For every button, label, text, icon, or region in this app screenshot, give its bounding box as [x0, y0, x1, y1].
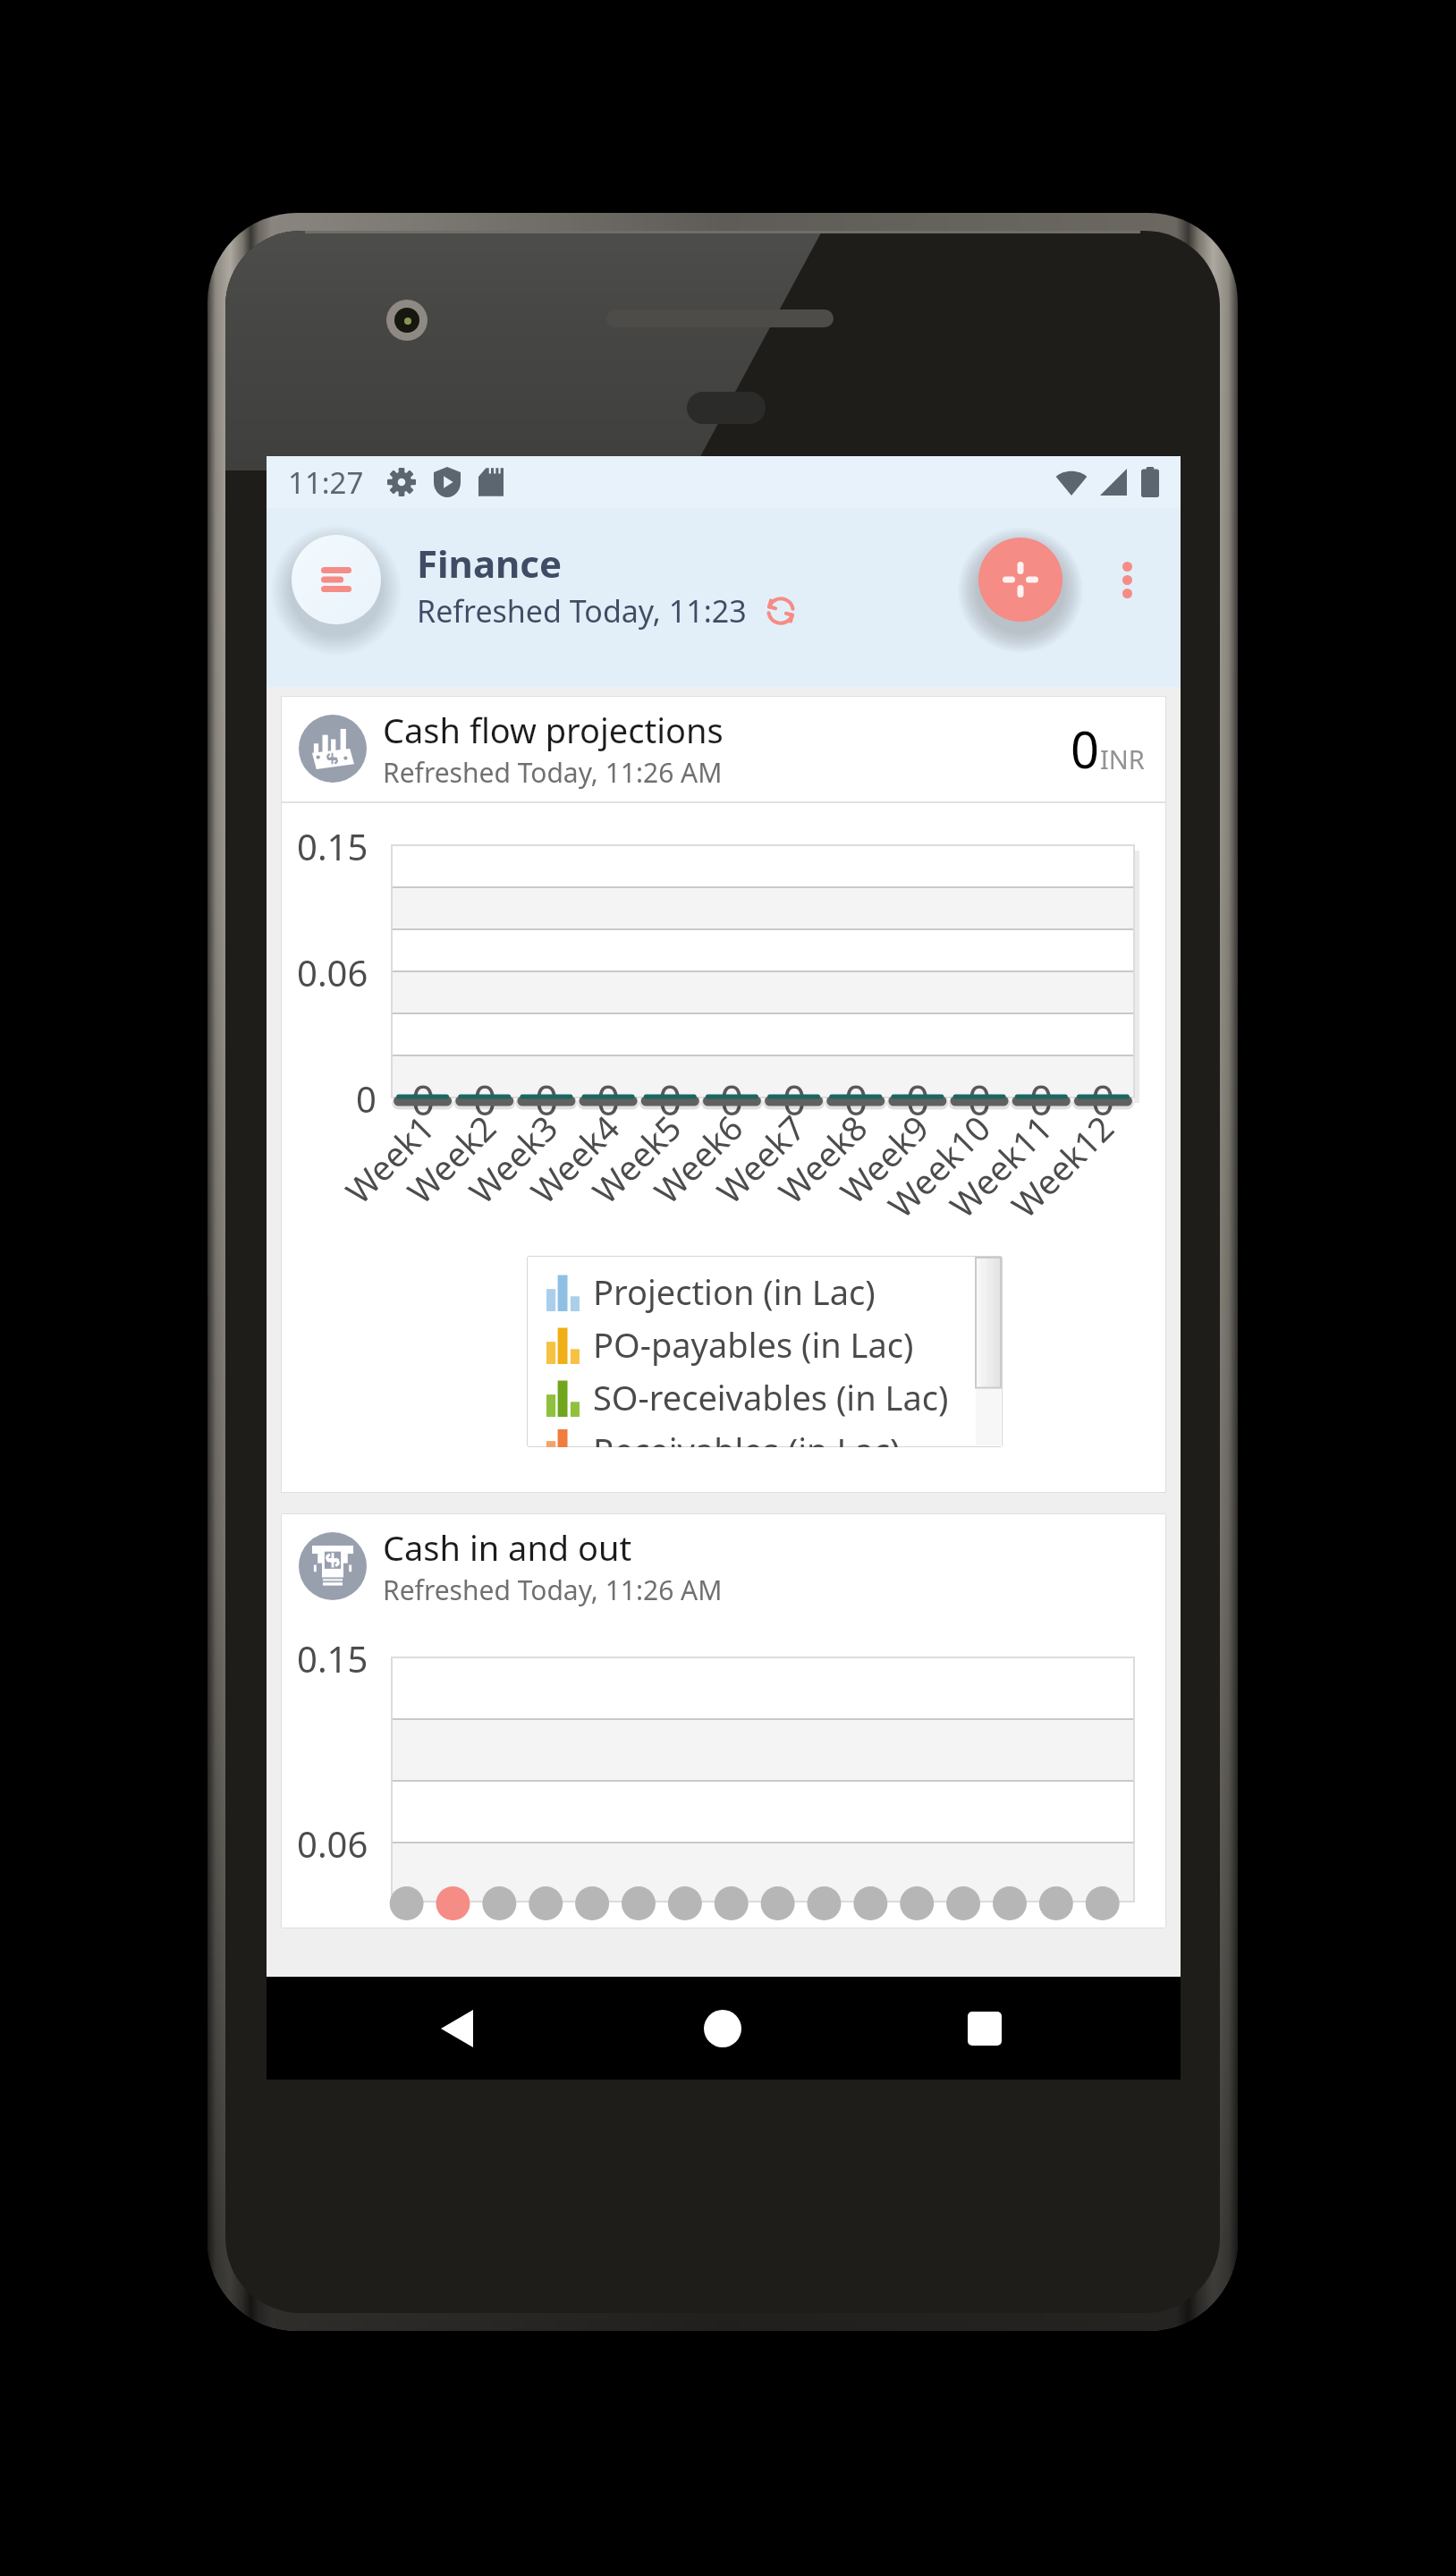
- button[interactable]: Cash in and out: [281, 1513, 1166, 1928]
- staticText: 0: [1091, 1072, 1115, 1128]
- staticText: Finance: [417, 538, 563, 589]
- staticText: 0: [597, 1072, 621, 1128]
- button[interactable]: Back: [414, 1986, 500, 2072]
- staticText: Cash in and out: [383, 1524, 632, 1571]
- staticText: Cash flow projections: [383, 707, 724, 753]
- button[interactable]: Scan: [978, 538, 1062, 622]
- staticText: 0.06: [297, 1819, 368, 1868]
- staticText: 0: [356, 1074, 377, 1123]
- staticText: Week3: [458, 1104, 567, 1213]
- staticText: Week4: [520, 1104, 629, 1213]
- button[interactable]: Cash flow projections: [281, 696, 1166, 1493]
- staticText: Week12: [1001, 1104, 1124, 1227]
- staticText: 0.15: [297, 1634, 368, 1682]
- staticText: 0: [411, 1072, 436, 1128]
- staticText: Week9: [830, 1104, 938, 1213]
- staticText: Week7: [706, 1104, 815, 1213]
- staticText: PO-payables (in Lac): [593, 1321, 914, 1368]
- staticText: Projection (in Lac): [593, 1268, 876, 1315]
- staticText: 0: [968, 1072, 992, 1128]
- staticText: Refreshed Today, 11:23: [417, 590, 747, 631]
- staticText: 0: [535, 1072, 559, 1128]
- staticText: 0: [844, 1072, 868, 1128]
- staticText: 0: [658, 1072, 682, 1128]
- staticText: 0: [473, 1072, 497, 1128]
- staticText: Week6: [644, 1104, 752, 1213]
- button[interactable]: Menu: [292, 535, 381, 624]
- button[interactable]: Refresh: [761, 591, 800, 631]
- staticText: 0.15: [297, 822, 368, 870]
- staticText: INR: [1100, 741, 1145, 776]
- staticText: Week1: [335, 1104, 444, 1213]
- button[interactable]: Recents: [942, 1986, 1028, 2072]
- staticText: 0: [1029, 1072, 1054, 1128]
- staticText: SO-receivables (in Lac): [593, 1374, 949, 1420]
- staticText: 0.06: [297, 948, 368, 996]
- staticText: 11:27: [288, 462, 364, 503]
- button[interactable]: Home: [680, 1986, 766, 2072]
- staticText: Week10: [877, 1104, 1000, 1227]
- staticText: Week8: [768, 1104, 877, 1213]
- staticText: Refreshed Today, 11:26 AM: [383, 754, 723, 791]
- staticText: Receivables (in Lac): [593, 1427, 901, 1447]
- button[interactable]: More options: [1093, 546, 1161, 614]
- staticText: Refreshed Today, 11:26 AM: [383, 1572, 723, 1608]
- staticText: Week2: [397, 1104, 505, 1213]
- staticText: Week5: [582, 1104, 691, 1213]
- staticText: Week11: [939, 1104, 1062, 1227]
- staticText: 0: [1071, 715, 1100, 783]
- staticText: 0: [720, 1072, 744, 1128]
- staticText: 0: [906, 1072, 930, 1128]
- staticText: 0: [783, 1072, 807, 1128]
